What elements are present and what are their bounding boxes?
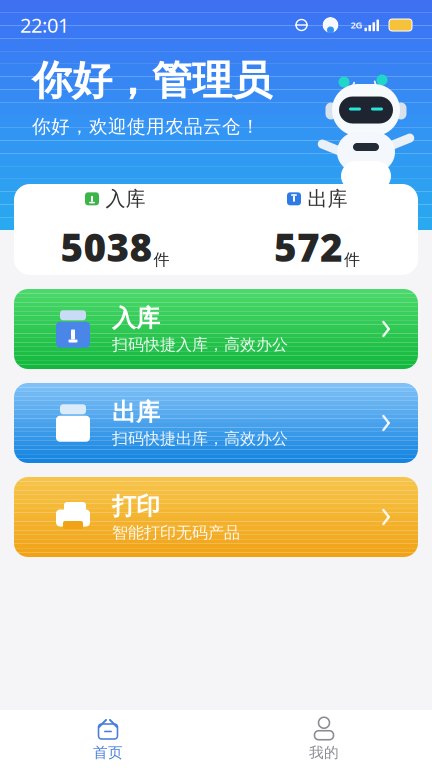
- staticText: 出库: [112, 397, 160, 427]
- staticText: 扫码快捷入库，高效办公: [112, 335, 288, 355]
- staticText: 打印: [112, 491, 160, 521]
- staticText: 首页: [93, 743, 123, 761]
- staticText: 入库: [112, 303, 160, 333]
- staticText: 智能打印无码产品: [112, 523, 240, 543]
- button[interactable]: 我的: [216, 713, 432, 765]
- staticText: 件: [153, 250, 169, 269]
- button[interactable]: 首页: [0, 713, 216, 765]
- button[interactable]: 打印: [14, 477, 418, 557]
- button[interactable]: 出库: [14, 383, 418, 463]
- staticText: 2G: [350, 19, 362, 31]
- staticText: 你好，欢迎使用农品云仓！: [32, 115, 260, 138]
- staticText: 出库: [307, 186, 347, 211]
- staticText: 我的: [309, 743, 339, 761]
- staticText: 22:01: [20, 12, 69, 38]
- staticText: 你好，管理员: [32, 56, 272, 105]
- staticText: 入库: [105, 186, 145, 211]
- staticText: 扫码快捷出库，高效办公: [112, 429, 288, 449]
- staticText: 5038: [60, 221, 152, 272]
- staticText: 件: [344, 250, 360, 269]
- staticText: 572: [274, 221, 343, 272]
- button[interactable]: 入库: [14, 289, 418, 369]
